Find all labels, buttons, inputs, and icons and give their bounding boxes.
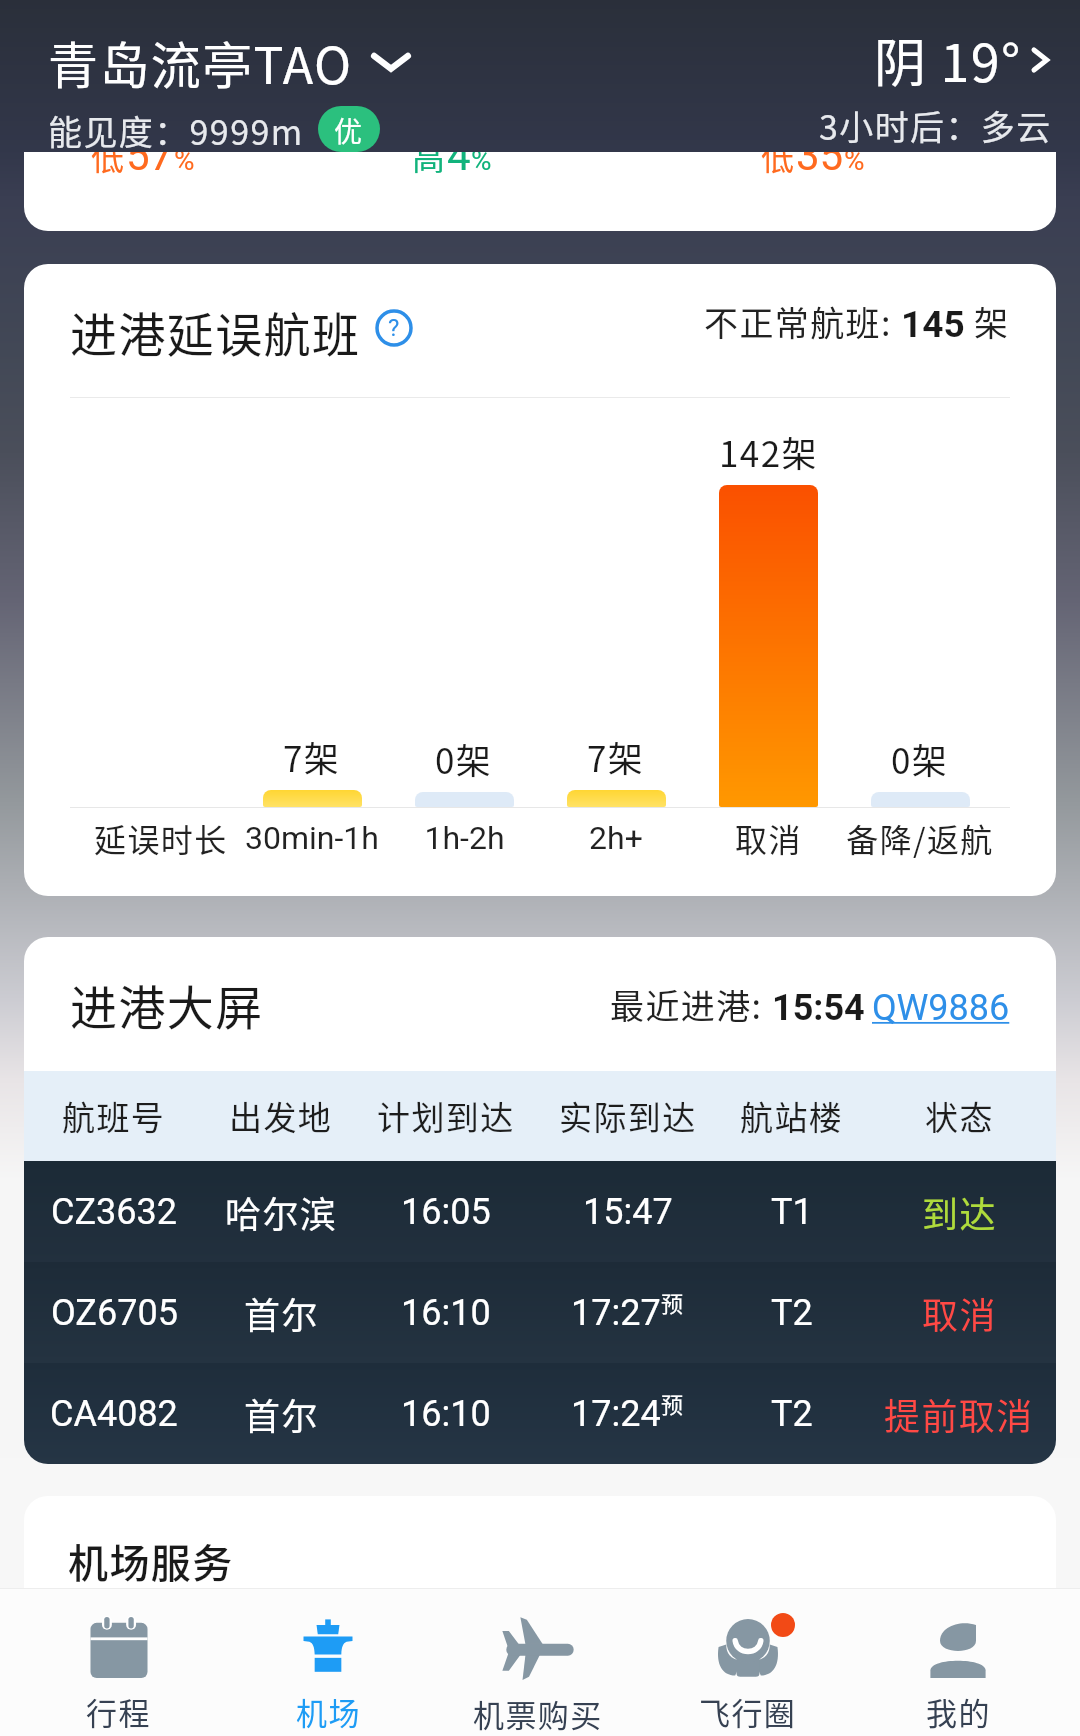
staticText: 阴 19° xyxy=(874,22,1022,97)
staticText: 到达 xyxy=(922,1186,997,1238)
staticText: OZ6705 xyxy=(51,1292,178,1334)
staticText: 架 xyxy=(965,297,1010,346)
staticText: 1h-2h xyxy=(424,819,505,857)
button[interactable]: CA4082 xyxy=(24,1363,1056,1464)
button[interactable]: 行程 xyxy=(14,1589,223,1736)
staticText: 低 xyxy=(761,152,796,180)
staticText: CZ3632 xyxy=(51,1191,177,1233)
staticText: 机场服务 xyxy=(68,1532,234,1588)
staticText: 预 xyxy=(661,1286,685,1318)
staticText: 行程 xyxy=(86,1689,151,1734)
button[interactable]: 机场 xyxy=(223,1589,433,1736)
staticText: 首尔 xyxy=(244,1287,319,1339)
staticText: 航班号 xyxy=(62,1092,166,1140)
staticText: 计划到达 xyxy=(377,1092,515,1140)
staticText: 4 xyxy=(447,152,471,180)
button[interactable]: 机票购买 xyxy=(433,1589,643,1736)
staticText: 15:54 xyxy=(772,987,865,1029)
staticText: 17:27 xyxy=(571,1292,661,1334)
button[interactable]: Help xyxy=(375,309,413,347)
staticText: 出发地 xyxy=(229,1092,333,1140)
staticText: ? xyxy=(388,314,400,342)
button[interactable]: 青岛流亭TAO xyxy=(48,26,411,98)
staticText: 低 xyxy=(91,152,126,180)
staticText: % xyxy=(174,152,195,177)
staticText: 16:10 xyxy=(401,1393,491,1435)
staticText: 7架 xyxy=(283,731,341,782)
staticText: 提前取消 xyxy=(884,1388,1034,1440)
staticText: 首尔 xyxy=(244,1388,319,1440)
staticText: 57 xyxy=(126,152,174,180)
staticText: 0架 xyxy=(435,733,493,784)
staticText: 7架 xyxy=(587,731,645,782)
staticText: 最近进港: xyxy=(610,980,772,1029)
staticText: 取消 xyxy=(922,1287,997,1339)
staticText: 优 xyxy=(334,110,364,148)
staticText: 青岛流亭TAO xyxy=(48,26,353,98)
staticText: 哈尔滨 xyxy=(225,1186,338,1238)
staticText: 30min-1h xyxy=(245,819,379,857)
staticText: 高 xyxy=(412,152,447,180)
staticText: % xyxy=(471,152,492,177)
staticText: 能见度：9999m xyxy=(48,106,304,152)
staticText: 机票购买 xyxy=(473,1691,603,1736)
staticText: 预 xyxy=(661,1387,685,1419)
staticText: T2 xyxy=(771,1393,813,1435)
staticText: 航站楼 xyxy=(740,1092,844,1140)
staticText: T1 xyxy=(771,1191,813,1233)
staticText: 我的 xyxy=(926,1689,991,1734)
button[interactable]: 低 xyxy=(24,152,1056,231)
button[interactable]: 我的 xyxy=(853,1589,1063,1736)
staticText: 飞行圈 xyxy=(699,1689,797,1734)
staticText: 35 xyxy=(796,152,844,180)
staticText: 备降/返航 xyxy=(846,815,994,861)
staticText: 17:24 xyxy=(571,1393,661,1435)
staticText: 实际到达 xyxy=(559,1092,697,1140)
staticText: 进港大屏 xyxy=(70,970,264,1038)
button[interactable]: CZ3632 xyxy=(24,1161,1056,1262)
staticText: % xyxy=(844,152,865,177)
button[interactable]: 阴 19° xyxy=(874,22,1052,97)
staticText: 145 xyxy=(901,303,965,346)
staticText: 进港延误航班 xyxy=(70,297,361,359)
staticText: 延误时长 xyxy=(94,815,228,861)
staticText: 2h+ xyxy=(589,819,643,857)
button[interactable]: 飞行圈 xyxy=(643,1589,853,1736)
staticText: 状态 xyxy=(925,1092,994,1140)
staticText: T2 xyxy=(771,1292,813,1334)
staticText: 16:10 xyxy=(401,1292,491,1334)
staticText: 16:05 xyxy=(401,1191,491,1233)
staticText: 15:47 xyxy=(583,1191,673,1233)
staticText: 机场 xyxy=(296,1689,361,1734)
staticText: 3小时后：多云 xyxy=(819,101,1052,150)
staticText: 0架 xyxy=(891,733,949,784)
staticText: CA4082 xyxy=(50,1393,178,1435)
staticText: QW9886 xyxy=(872,987,1010,1029)
staticText: 取消 xyxy=(735,815,802,861)
button[interactable]: OZ6705 xyxy=(24,1262,1056,1363)
staticText: 142架 xyxy=(719,426,818,477)
staticText: 不正常航班: xyxy=(704,297,901,346)
